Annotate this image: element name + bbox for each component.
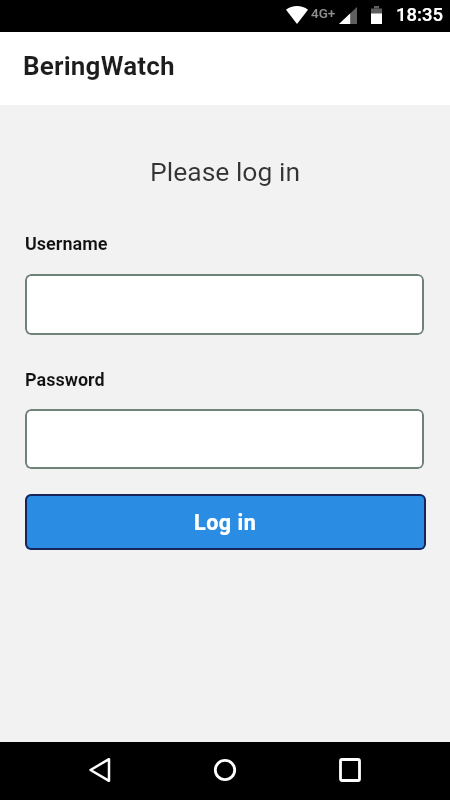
- staticText: BeringWatch: [23, 51, 175, 81]
- button[interactable]: [201, 746, 249, 794]
- staticText: Password: [25, 369, 105, 390]
- button[interactable]: [25, 274, 424, 335]
- staticText: Please log in: [150, 156, 301, 187]
- button[interactable]: [76, 746, 124, 794]
- button[interactable]: Log in: [25, 494, 426, 550]
- staticText: Username: [25, 233, 108, 254]
- staticText: 18:35: [396, 4, 443, 26]
- staticText: 4G+: [311, 5, 336, 21]
- staticText: Log in: [194, 510, 257, 535]
- button[interactable]: [326, 746, 374, 794]
- button[interactable]: [25, 409, 424, 469]
